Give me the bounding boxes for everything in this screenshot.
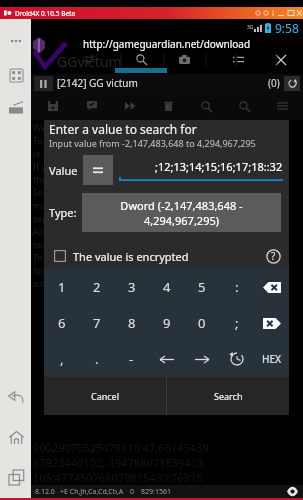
staticText: 105;477450768079815430;76315	[33, 470, 203, 485]
staticText: To get started, enter a value	[33, 134, 152, 146]
button[interactable]: Menu	[271, 94, 293, 118]
staticText: 829:1561	[141, 487, 171, 497]
staticText: Enter a value to search for	[49, 121, 197, 137]
button[interactable]: hist	[219, 341, 254, 377]
button[interactable]: Search	[131, 51, 151, 68]
button[interactable]: Save	[42, 94, 64, 118]
staticText: 3	[128, 278, 136, 296]
button[interactable]: Cancel	[44, 377, 166, 415]
button[interactable]: Filter	[79, 51, 99, 68]
staticText: 9	[163, 314, 171, 332]
button[interactable]: Back	[5, 386, 27, 408]
staticText: Input value from -2,147,483,648 to 4,294…	[49, 137, 256, 149]
staticText: ?	[271, 249, 276, 263]
staticText: Search	[214, 390, 243, 402]
staticText: If you can't find the value,	[33, 160, 142, 172]
button[interactable]: 2	[79, 269, 114, 305]
staticText: To refine results, change the	[33, 251, 153, 263]
button[interactable]: left	[149, 341, 184, 377]
staticText: icons above for more options.	[33, 277, 159, 289]
button[interactable]: New search	[233, 94, 255, 118]
staticText: separately from what you see.	[33, 212, 161, 224]
staticText: (e.g. 100) and press Search.	[33, 147, 149, 159]
button[interactable]: 5	[184, 269, 219, 305]
button[interactable]: Load	[81, 94, 103, 118]
button[interactable]: Equal to	[83, 155, 113, 185]
button[interactable]: Recents	[5, 466, 27, 488]
button[interactable]: HEX	[254, 341, 289, 377]
staticText: ;	[235, 314, 239, 332]
button[interactable]: ,	[44, 341, 79, 377]
button[interactable]: Delete	[157, 94, 179, 118]
staticText: HEX	[262, 352, 282, 366]
staticText: Droid4X 0.10.5 Beta	[15, 9, 76, 18]
button[interactable]: Apps	[6, 65, 26, 85]
button[interactable]: right	[184, 341, 219, 377]
button[interactable]: 8	[114, 305, 149, 341]
button[interactable]: 7	[79, 305, 114, 341]
staticText: [2142] GG victum	[57, 76, 138, 90]
staticText: Value	[49, 163, 78, 178]
staticText: :	[235, 278, 239, 296]
staticText: 3G	[247, 24, 254, 31]
staticText: 9:58	[275, 20, 299, 36]
button[interactable]: Keyboard mapping	[6, 98, 26, 118]
staticText: ;12;13;14;15;16;17;18::32	[155, 159, 283, 174]
button[interactable]: Search again	[195, 94, 217, 118]
button[interactable]: 1	[44, 269, 79, 305]
staticText: 2	[93, 278, 101, 296]
staticText: 0	[130, 487, 135, 497]
staticText: then try another type in the	[33, 173, 150, 185]
button[interactable]: ;12;13;14;15;16;17;18::32	[119, 159, 283, 181]
button[interactable]: 0	[184, 305, 219, 341]
staticText: Search dialog. Remember that	[33, 186, 162, 198]
staticText: Also note that only exact	[33, 225, 137, 237]
button[interactable]: Close	[271, 51, 291, 68]
button[interactable]: Tabs	[174, 51, 194, 68]
staticText: 4	[163, 278, 171, 296]
button[interactable]: -	[114, 341, 149, 377]
staticText: -	[129, 350, 134, 368]
staticText: (0)	[268, 76, 280, 90]
staticText: Cancel	[91, 390, 120, 402]
button[interactable]: Refresh	[284, 76, 300, 91]
button[interactable]: bsR	[254, 305, 289, 341]
button[interactable]: Forward	[119, 94, 141, 118]
staticText: location of search and click	[33, 264, 147, 276]
button[interactable]: ;	[219, 305, 254, 341]
button[interactable]: 6	[44, 305, 79, 341]
staticText: The value is encrypted	[73, 249, 189, 264]
button[interactable]: More	[6, 31, 26, 51]
button[interactable]: 9	[149, 305, 184, 341]
staticText: 67923440102;-194788071839413	[33, 455, 204, 470]
staticText: Welcome to GameGuardian!	[33, 121, 152, 133]
staticText: 0	[198, 314, 206, 332]
button[interactable]: The value is encrypted	[44, 243, 262, 269]
staticText: Dword (-2,147,483,648 - 4,294,967,295)	[120, 198, 243, 228]
button[interactable]: Menu	[228, 51, 248, 68]
staticText: 1	[58, 278, 66, 296]
button[interactable]: Search	[167, 377, 289, 415]
other: Window controls	[254, 9, 300, 17]
staticText: .	[95, 350, 99, 368]
staticText: Type:	[49, 205, 77, 220]
button[interactable]: :	[219, 269, 254, 305]
button[interactable]: 3	[114, 269, 149, 305]
staticText: 8.12.0	[35, 487, 55, 497]
staticText: http://gameguardian.net/download	[83, 37, 251, 51]
staticText: GGvictum	[57, 52, 122, 69]
staticText: 6	[58, 314, 66, 332]
button[interactable]: Home	[5, 426, 27, 448]
button[interactable]: Help	[262, 245, 284, 267]
button[interactable]: Dword (-2,147,483,648 - 4,294,967,295)	[82, 193, 281, 232]
staticText: 90029070525479110 47;66145439	[33, 440, 209, 455]
button[interactable]: 4	[149, 269, 184, 305]
staticText: 8	[128, 314, 136, 332]
button[interactable]: Show	[285, 485, 299, 498]
staticText: 7	[93, 314, 101, 332]
staticText: searches are supported here.	[33, 238, 157, 250]
button[interactable]: Pause	[34, 76, 53, 91]
button[interactable]: .	[79, 341, 114, 377]
staticText: 5	[198, 278, 206, 296]
button[interactable]: bsL	[254, 269, 289, 305]
